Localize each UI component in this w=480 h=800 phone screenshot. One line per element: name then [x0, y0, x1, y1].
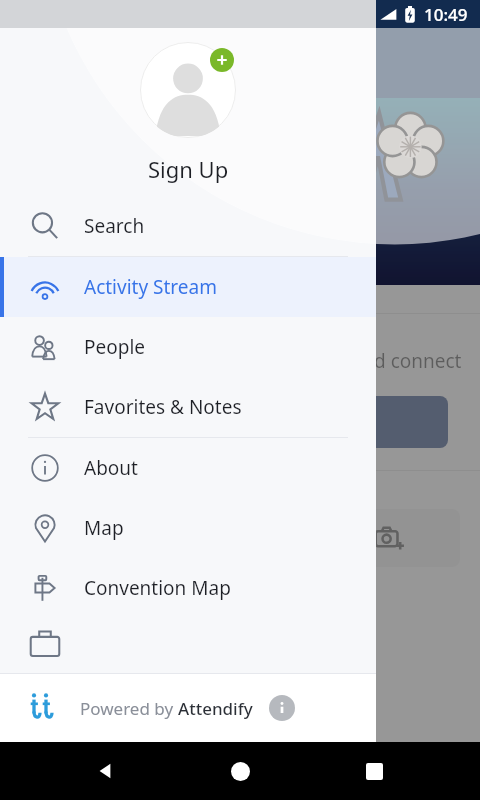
- staticText: Search: [84, 213, 145, 239]
- staticText: d connect: [374, 348, 462, 374]
- button[interactable]: [330, 396, 448, 448]
- button[interactable]: Powered by: [0, 674, 376, 742]
- staticText: Convention Map: [84, 575, 231, 601]
- staticText: Map: [84, 515, 124, 541]
- staticText: 10:49: [424, 3, 468, 26]
- button[interactable]: Sign Up: [0, 28, 376, 196]
- staticText: About: [84, 455, 138, 481]
- button[interactable]: Information: [269, 695, 295, 721]
- staticText: Activity Stream: [84, 274, 217, 300]
- staticText: People: [84, 334, 146, 360]
- button[interactable]: Search: [0, 196, 376, 256]
- button[interactable]: Favorites & Notes: [0, 377, 376, 437]
- button[interactable]: People: [0, 317, 376, 377]
- button[interactable]: Map: [0, 498, 376, 558]
- staticText: Sign Up: [148, 154, 229, 184]
- staticText: Attendify: [178, 697, 253, 720]
- button[interactable]: Back: [78, 743, 134, 799]
- staticText: Powered by: [80, 697, 178, 720]
- button[interactable]: Activity Stream: [0, 257, 376, 317]
- staticText: Favorites & Notes: [84, 394, 242, 420]
- button[interactable]: Home: [212, 743, 268, 799]
- button[interactable]: Convention Map: [0, 558, 376, 618]
- button[interactable]: [0, 618, 376, 800]
- button[interactable]: About: [0, 438, 376, 498]
- button[interactable]: Recent apps: [346, 743, 402, 799]
